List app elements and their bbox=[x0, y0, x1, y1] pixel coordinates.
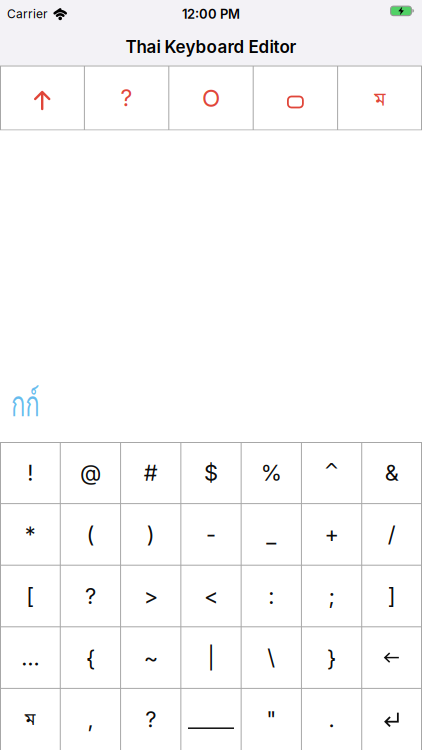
button[interactable]: ? bbox=[121, 688, 181, 750]
button[interactable]: # bbox=[121, 442, 181, 504]
button[interactable]: ( bbox=[60, 504, 121, 565]
button[interactable]: : bbox=[241, 565, 301, 627]
staticText: O bbox=[202, 83, 220, 112]
button[interactable]: + bbox=[301, 504, 362, 565]
staticText: { bbox=[86, 644, 95, 671]
staticText: ম bbox=[25, 709, 36, 732]
staticText: " bbox=[266, 706, 276, 732]
button[interactable]: } bbox=[301, 627, 362, 688]
staticText: + bbox=[325, 521, 339, 548]
staticText: % bbox=[261, 459, 282, 486]
staticText: & bbox=[385, 459, 399, 486]
button[interactable]: ! bbox=[0, 442, 60, 504]
button[interactable]: [ bbox=[0, 565, 60, 627]
button[interactable]: > bbox=[121, 565, 181, 627]
staticText: : bbox=[268, 583, 274, 609]
staticText: ~ bbox=[144, 644, 158, 671]
staticText: - bbox=[206, 521, 216, 548]
button[interactable]: * bbox=[0, 504, 60, 565]
staticText: [ bbox=[26, 583, 34, 609]
button[interactable]: | bbox=[181, 627, 241, 688]
button[interactable]: … bbox=[0, 627, 60, 688]
button[interactable]: % bbox=[241, 442, 301, 504]
button[interactable]: Space bbox=[253, 65, 338, 130]
staticText: กก์ bbox=[11, 376, 53, 432]
button[interactable]: - bbox=[181, 504, 241, 565]
staticText: ? bbox=[145, 706, 156, 732]
button[interactable]: ) bbox=[121, 504, 181, 565]
button[interactable]: ] bbox=[362, 565, 422, 627]
button[interactable]: < bbox=[181, 565, 241, 627]
button[interactable]: Return bbox=[362, 688, 422, 750]
staticText: ( bbox=[86, 521, 94, 548]
button[interactable]: Underscore bbox=[181, 688, 241, 750]
staticText: ? bbox=[121, 84, 133, 112]
staticText: 12:00 PM bbox=[182, 6, 240, 22]
staticText: ) bbox=[147, 521, 155, 548]
staticText: * bbox=[25, 521, 36, 548]
staticText: @ bbox=[80, 459, 101, 486]
staticText: # bbox=[144, 459, 158, 486]
button[interactable]: " bbox=[241, 688, 301, 750]
staticText: ] bbox=[388, 583, 396, 609]
staticText: . bbox=[329, 706, 335, 732]
staticText: ^ bbox=[324, 460, 340, 482]
button[interactable]: \ bbox=[241, 627, 301, 688]
button[interactable]: { bbox=[60, 627, 121, 688]
staticText: } bbox=[327, 644, 336, 671]
button[interactable]: ? bbox=[60, 565, 121, 627]
button[interactable]: ? bbox=[84, 65, 169, 130]
button[interactable]: ম bbox=[0, 688, 60, 750]
button[interactable]: ; bbox=[301, 565, 362, 627]
button[interactable]: , bbox=[60, 688, 121, 750]
staticText: $ bbox=[204, 459, 218, 486]
staticText: Thai Keyboard Editor bbox=[125, 36, 296, 57]
button[interactable]: & bbox=[362, 442, 422, 504]
button[interactable]: $ bbox=[181, 442, 241, 504]
staticText: ? bbox=[85, 583, 96, 609]
button[interactable]: . bbox=[301, 688, 362, 750]
button[interactable]: O bbox=[169, 65, 253, 130]
staticText: ম bbox=[374, 89, 385, 113]
button[interactable]: @ bbox=[60, 442, 121, 504]
staticText: … bbox=[21, 644, 39, 671]
button[interactable]: _ bbox=[241, 504, 301, 565]
staticText: ; bbox=[329, 583, 335, 609]
staticText: Carrier bbox=[7, 7, 48, 21]
staticText: \ bbox=[267, 644, 275, 671]
button[interactable]: / bbox=[362, 504, 422, 565]
button[interactable]: ম bbox=[338, 65, 422, 130]
staticText: ! bbox=[27, 459, 33, 486]
staticText: _ bbox=[266, 521, 276, 548]
staticText: < bbox=[204, 583, 218, 609]
button[interactable]: Delete bbox=[362, 627, 422, 688]
staticText: , bbox=[87, 706, 93, 732]
button[interactable]: Shift bbox=[0, 65, 84, 130]
staticText: | bbox=[207, 644, 214, 671]
staticText: / bbox=[388, 521, 396, 548]
staticText: > bbox=[144, 583, 158, 609]
button[interactable]: ^ bbox=[301, 442, 362, 504]
button[interactable]: ~ bbox=[121, 627, 181, 688]
